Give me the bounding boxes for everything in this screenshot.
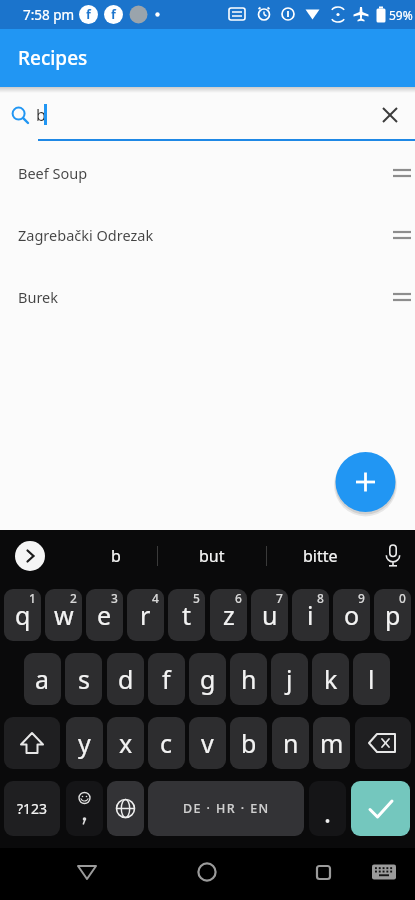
staticText: ?123 xyxy=(17,799,48,818)
button[interactable]: bitte xyxy=(266,536,374,576)
button[interactable] xyxy=(192,857,222,887)
staticText: 2 xyxy=(70,590,77,606)
button[interactable]: e xyxy=(86,589,123,641)
button[interactable] xyxy=(72,857,102,887)
staticText: 5 xyxy=(193,590,200,606)
staticText: u xyxy=(262,598,278,632)
staticText: s xyxy=(78,662,90,696)
staticText: f xyxy=(86,6,91,23)
staticText: e xyxy=(97,598,112,632)
button[interactable]: d xyxy=(107,653,144,705)
staticText: l xyxy=(368,662,375,696)
button[interactable]: c xyxy=(148,717,185,769)
button[interactable]: o xyxy=(333,589,370,641)
staticText: j xyxy=(286,662,293,696)
staticText: b xyxy=(36,104,46,126)
button[interactable]: Burek xyxy=(0,266,415,328)
button[interactable]: n xyxy=(272,717,309,769)
button[interactable] xyxy=(66,781,103,836)
button[interactable]: q xyxy=(4,589,41,641)
button[interactable]: DE · HR · EN xyxy=(148,781,304,836)
staticText: bitte xyxy=(303,545,338,567)
staticText: Burek xyxy=(18,287,59,307)
staticText: v xyxy=(201,726,214,760)
staticText: k xyxy=(324,662,338,696)
button[interactable] xyxy=(355,717,411,769)
staticText: n xyxy=(283,726,299,760)
staticText: DE · HR · EN xyxy=(183,800,270,817)
staticText: 1 xyxy=(29,590,36,606)
button[interactable] xyxy=(378,541,408,571)
button[interactable]: b xyxy=(64,536,168,576)
button[interactable]: t xyxy=(168,589,205,641)
staticText: r xyxy=(140,598,151,632)
button[interactable] xyxy=(369,857,399,887)
staticText: f xyxy=(111,6,116,23)
button[interactable]: h xyxy=(230,653,267,705)
staticText: f xyxy=(162,662,171,696)
button[interactable]: b xyxy=(230,717,267,769)
button[interactable]: but xyxy=(157,536,266,576)
button[interactable]: y xyxy=(66,717,103,769)
staticText: 3 xyxy=(111,590,118,606)
button[interactable]: f xyxy=(148,653,185,705)
button[interactable] xyxy=(308,857,338,887)
button[interactable] xyxy=(107,781,144,836)
button[interactable]: z xyxy=(210,589,247,641)
button[interactable] xyxy=(374,99,406,131)
button[interactable]: b xyxy=(0,92,415,142)
staticText: b xyxy=(241,726,257,760)
button[interactable]: i xyxy=(292,589,329,641)
button[interactable]: u xyxy=(251,589,288,641)
button[interactable]: k xyxy=(312,653,349,705)
button[interactable]: r xyxy=(127,589,164,641)
staticText: g xyxy=(200,662,216,696)
button[interactable]: ?123 xyxy=(4,781,60,836)
staticText: t xyxy=(182,598,192,632)
staticText: but xyxy=(199,545,225,567)
button[interactable] xyxy=(333,450,398,515)
staticText: 7:58 pm xyxy=(23,6,75,24)
button[interactable] xyxy=(351,781,410,836)
staticText: z xyxy=(223,598,235,632)
staticText: x xyxy=(119,726,133,760)
button[interactable] xyxy=(4,717,60,769)
staticText: Zagrebački Odrezak xyxy=(18,225,154,245)
staticText: 9 xyxy=(358,590,365,606)
staticText: m xyxy=(320,726,344,760)
button[interactable]: l xyxy=(353,653,390,705)
staticText: 59% xyxy=(389,7,413,23)
staticText: i xyxy=(307,598,314,632)
staticText: Beef Soup xyxy=(18,163,88,183)
staticText: q xyxy=(15,598,31,632)
staticText: 4 xyxy=(152,590,159,606)
button[interactable]: v xyxy=(189,717,226,769)
button[interactable]: j xyxy=(271,653,308,705)
staticText: 0 xyxy=(399,590,406,606)
staticText: 8 xyxy=(317,590,324,606)
button[interactable] xyxy=(15,541,45,571)
button[interactable]: m xyxy=(313,717,350,769)
button[interactable]: g xyxy=(189,653,226,705)
button[interactable]: w xyxy=(45,589,82,641)
button[interactable]: s xyxy=(65,653,102,705)
button[interactable]: a xyxy=(24,653,61,705)
button[interactable] xyxy=(309,781,346,836)
button[interactable]: p xyxy=(374,589,411,641)
button[interactable]: Beef Soup xyxy=(0,142,415,204)
button[interactable]: Zagrebački Odrezak xyxy=(0,204,415,266)
button[interactable]: x xyxy=(107,717,144,769)
staticText: d xyxy=(118,662,134,696)
staticText: w xyxy=(54,598,74,632)
staticText: b xyxy=(111,545,121,567)
staticText: p xyxy=(385,598,401,632)
staticText: a xyxy=(35,662,50,696)
staticText: 6 xyxy=(235,590,242,606)
staticText: Recipes xyxy=(18,45,88,71)
staticText: y xyxy=(78,726,91,760)
staticText: h xyxy=(241,662,257,696)
staticText: c xyxy=(160,726,173,760)
staticText: 7 xyxy=(276,590,283,606)
staticText: o xyxy=(344,598,360,632)
